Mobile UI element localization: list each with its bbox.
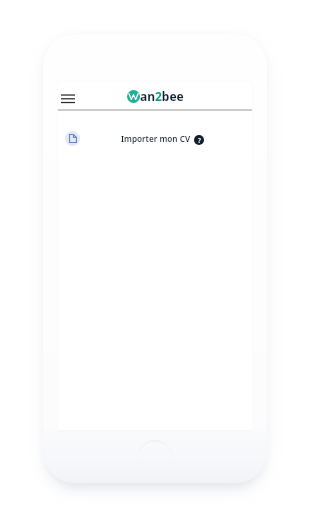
staticText: ? — [198, 136, 201, 144]
button[interactable]: Help — [194, 135, 204, 145]
button[interactable]: Open navigation menu — [58, 86, 79, 105]
staticText: Importer mon CV — [121, 133, 191, 144]
button[interactable]: Importer mon CV — [58, 128, 252, 149]
button[interactable]: an2bee — [127, 88, 184, 104]
staticText: an2bee — [140, 88, 184, 104]
